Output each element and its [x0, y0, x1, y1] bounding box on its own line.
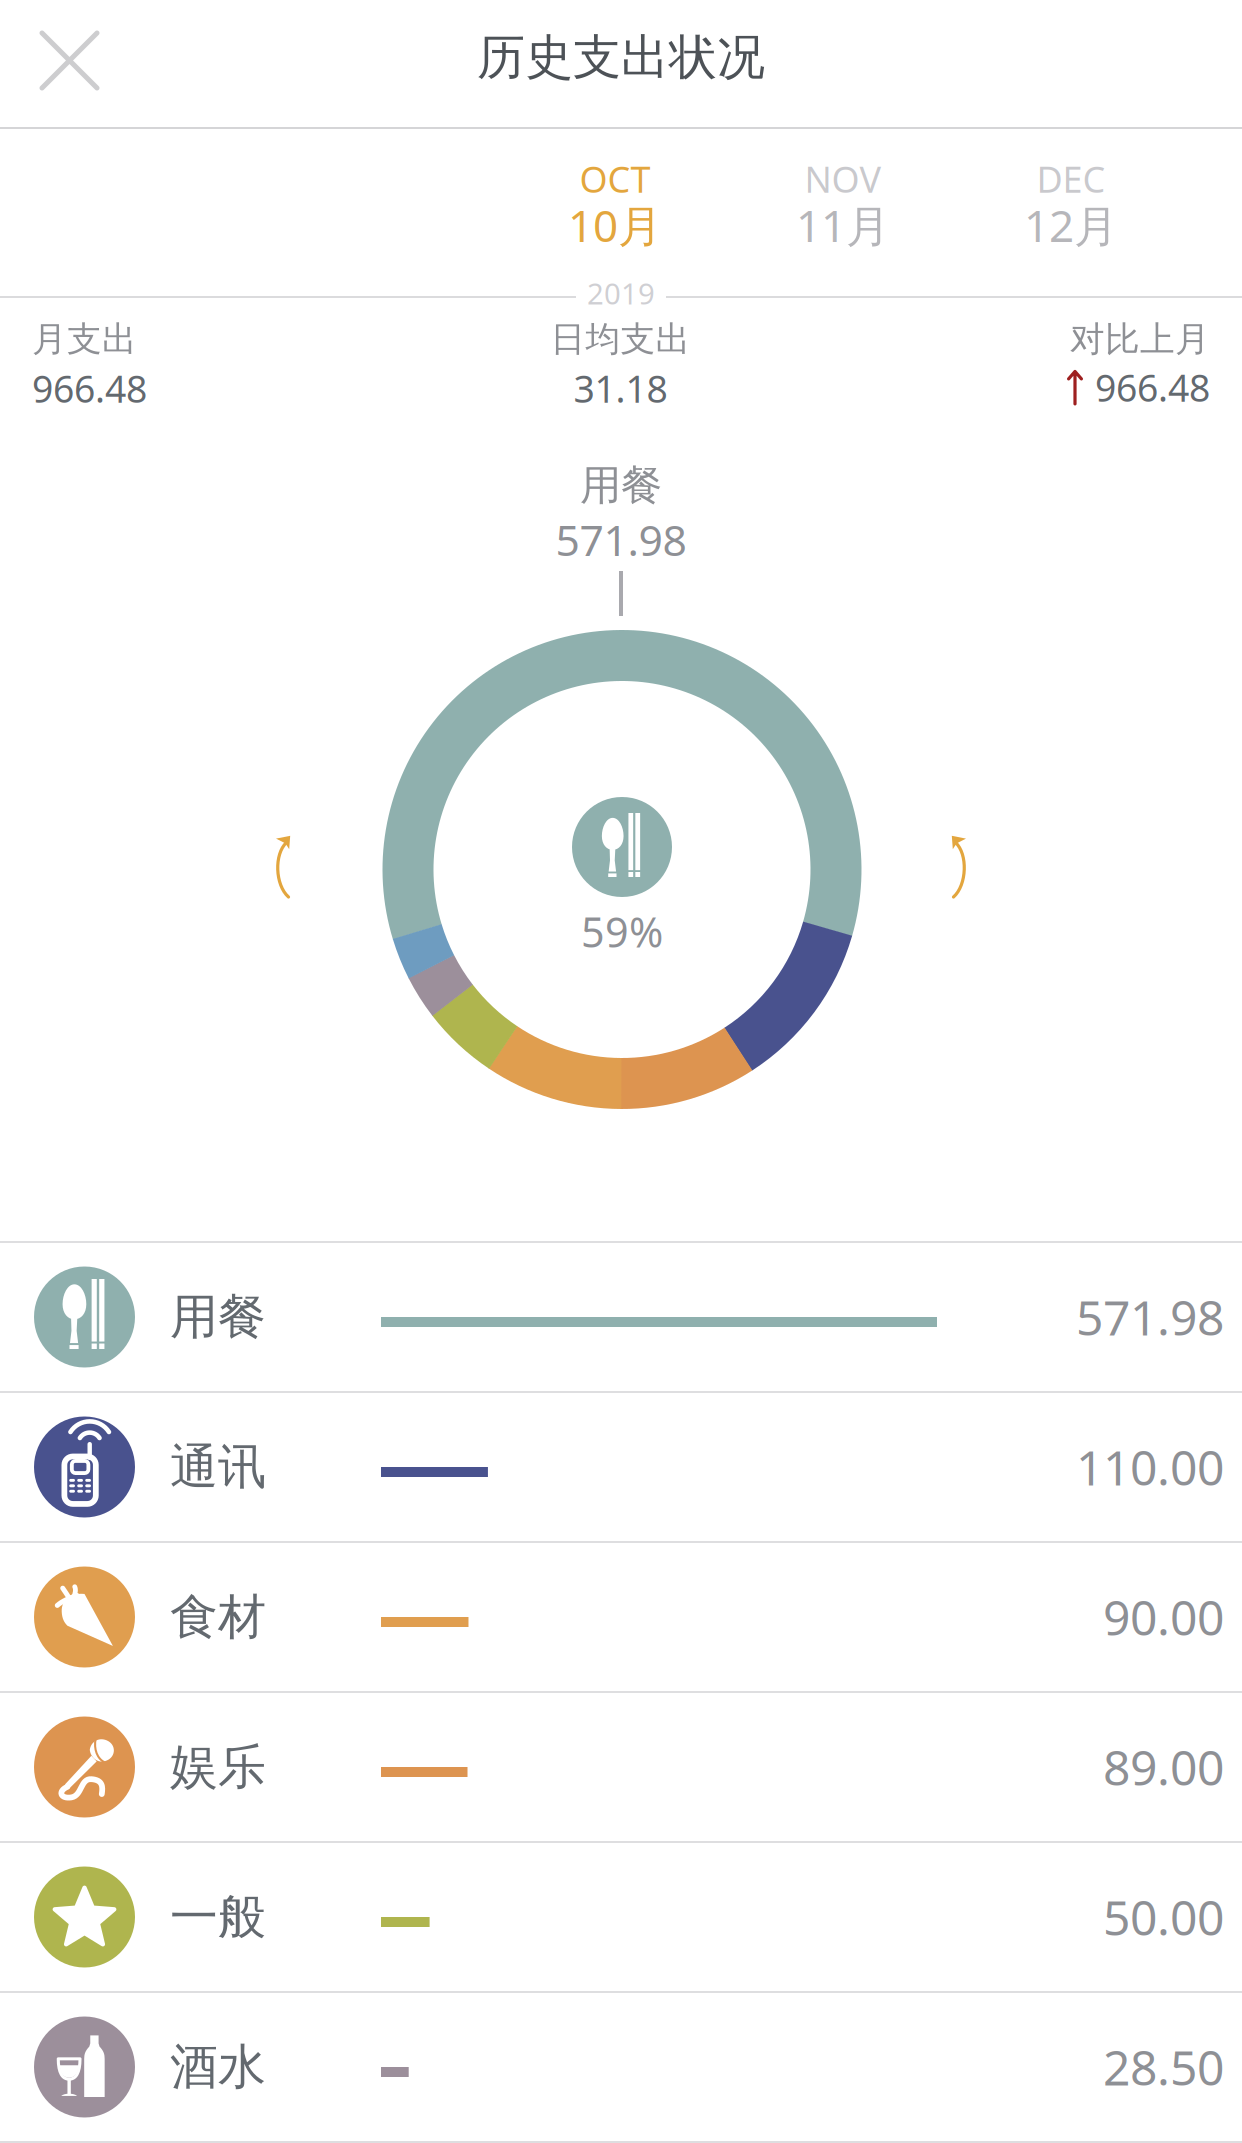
button[interactable]: OCT: [501, 129, 729, 296]
staticText: 966.48: [32, 364, 147, 413]
staticText: 59%: [581, 904, 663, 959]
staticText: 31.18: [573, 364, 667, 413]
staticText: 历史支出状况: [477, 28, 765, 87]
staticText: 通讯: [170, 1437, 266, 1496]
staticText: 11月: [796, 196, 890, 254]
staticText: 90.00: [1103, 1585, 1224, 1649]
staticText: 571.98: [555, 511, 686, 568]
staticText: 571.98: [1076, 1285, 1224, 1349]
button[interactable]: DEC: [957, 129, 1185, 296]
staticText: 110.00: [1076, 1435, 1224, 1499]
staticText: 10月: [568, 196, 662, 254]
staticText: 50.00: [1103, 1885, 1224, 1949]
staticText: 一般: [170, 1887, 266, 1946]
button[interactable]: 酒水: [0, 1993, 1242, 2143]
staticText: 月支出: [32, 318, 137, 361]
staticText: DEC: [1036, 155, 1105, 203]
button[interactable]: NOV: [729, 129, 957, 296]
button[interactable]: 通讯: [0, 1393, 1242, 1543]
staticText: 食材: [170, 1587, 266, 1646]
staticText: NOV: [804, 155, 881, 203]
button[interactable]: Next month: [947, 835, 969, 899]
button[interactable]: Previous month: [273, 835, 295, 899]
staticText: 966.48: [1095, 363, 1210, 412]
staticText: 酒水: [170, 2037, 266, 2096]
staticText: 用餐: [170, 1287, 266, 1346]
staticText: OCT: [579, 155, 650, 203]
staticText: 89.00: [1103, 1735, 1224, 1799]
staticText: 28.50: [1103, 2035, 1224, 2099]
staticText: 对比上月: [1070, 318, 1210, 361]
button[interactable]: 用餐: [0, 1243, 1242, 1393]
staticText: 娱乐: [170, 1737, 266, 1796]
staticText: 12月: [1024, 196, 1118, 254]
button[interactable]: 一般: [0, 1843, 1242, 1993]
staticText: 日均支出: [550, 318, 690, 361]
button[interactable]: 娱乐: [0, 1693, 1242, 1843]
staticText: 2019: [587, 273, 655, 312]
button[interactable]: Close: [0, 0, 131, 126]
staticText: 用餐: [580, 460, 662, 511]
button[interactable]: 食材: [0, 1543, 1242, 1693]
